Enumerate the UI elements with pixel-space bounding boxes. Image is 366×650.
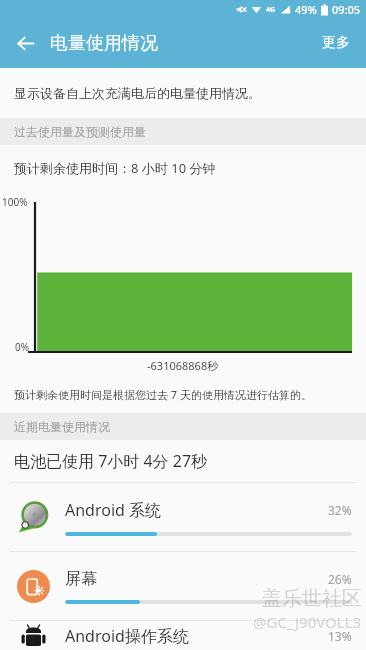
staticText: 显示设备自上次充满电后的电量使用情况。 <box>14 85 261 101</box>
staticText: 预计剩余使用时间是根据您过去 7 天的使用情况进行估算的。 <box>14 387 313 402</box>
staticText: 100% <box>2 195 28 209</box>
button[interactable]: Android 系统 <box>0 483 366 551</box>
staticText: 0% <box>15 340 30 354</box>
button[interactable]: 屏幕 <box>0 552 366 620</box>
staticText: 过去使用量及预测使用量 <box>14 124 146 139</box>
staticText: 26% <box>328 571 352 587</box>
staticText: 预计剩余使用时间：8 小时 10 分钟 <box>14 159 216 177</box>
button[interactable]: Back <box>6 24 44 62</box>
staticText: 4G <box>266 5 276 15</box>
staticText: 盖乐世社区 <box>262 586 362 611</box>
button[interactable]: Android操作系统 <box>0 621 366 650</box>
staticText: 13% <box>328 628 352 644</box>
staticText: 09:05 <box>332 2 361 17</box>
staticText: Android操作系统 <box>65 625 328 647</box>
button[interactable]: 更多 <box>310 25 362 61</box>
staticText: @GC_J90VOLL3 <box>253 612 362 632</box>
staticText: 电量使用情况 <box>50 32 158 55</box>
staticText: 屏幕 <box>65 569 328 589</box>
staticText: 电池已使用 7小时 4分 27秒 <box>14 450 208 472</box>
staticText: 32% <box>328 502 352 518</box>
staticText: -631068868秒 <box>147 358 219 373</box>
staticText: 49% <box>295 2 317 17</box>
staticText: 更多 <box>322 34 350 52</box>
staticText: 近期电量使用情况 <box>14 419 110 434</box>
staticText: Android 系统 <box>65 499 328 521</box>
